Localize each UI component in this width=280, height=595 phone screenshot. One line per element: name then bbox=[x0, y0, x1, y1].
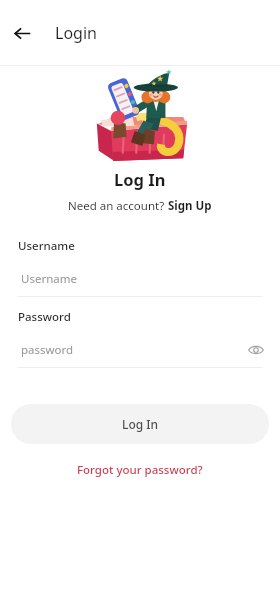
button[interactable]: Back bbox=[8, 19, 36, 47]
staticText: Log In bbox=[122, 416, 159, 432]
button[interactable]: Username bbox=[0, 268, 280, 290]
staticText: Forgot your password? bbox=[77, 462, 203, 478]
staticText: Login bbox=[55, 22, 97, 44]
staticText: Sign Up bbox=[168, 198, 212, 214]
staticText: Username bbox=[18, 238, 75, 254]
button[interactable]: Sign Up bbox=[168, 198, 212, 214]
staticText: Password bbox=[18, 309, 71, 325]
button[interactable]: password bbox=[0, 339, 280, 361]
button[interactable]: Forgot your password? bbox=[71, 460, 209, 480]
staticText: Username bbox=[21, 271, 77, 287]
button[interactable]: Log In bbox=[11, 404, 269, 444]
staticText: Log In bbox=[114, 168, 166, 190]
staticText: Need an account? bbox=[68, 198, 168, 214]
button[interactable]: Show password bbox=[246, 340, 266, 360]
staticText: password bbox=[21, 342, 74, 358]
